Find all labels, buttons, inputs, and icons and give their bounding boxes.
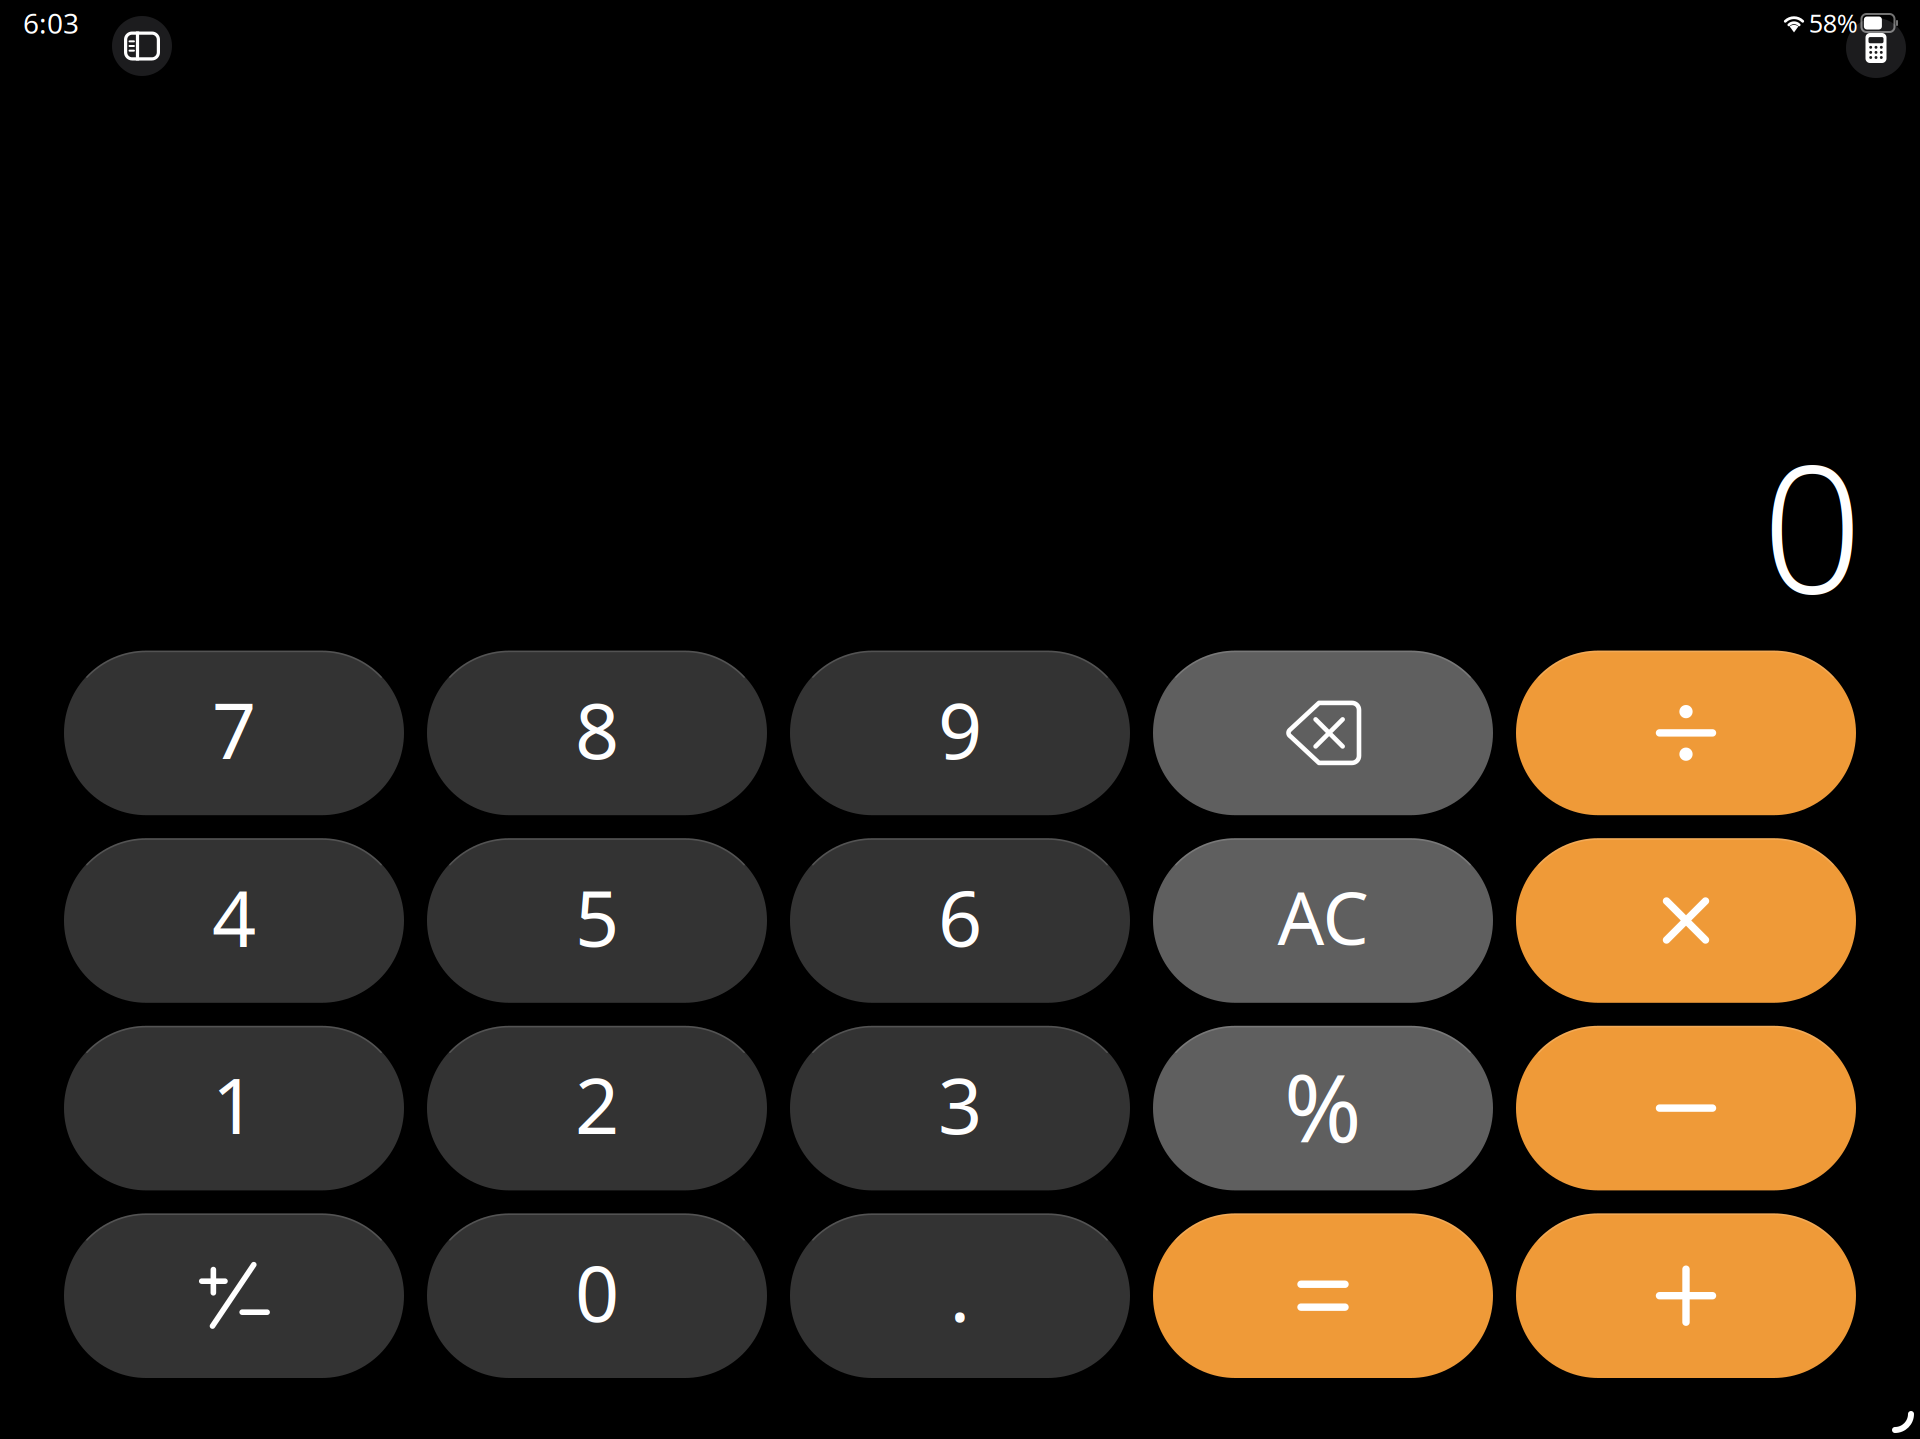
button[interactable]: Subtract (1516, 1026, 1856, 1190)
button[interactable]: Toggle sign (64, 1213, 404, 1378)
button[interactable]: 6 (790, 838, 1130, 1003)
button[interactable]: Equals (1153, 1213, 1493, 1378)
button[interactable]: 0 (427, 1213, 767, 1378)
staticText: . (949, 1240, 970, 1343)
staticText: 0 (1762, 408, 1862, 642)
button[interactable]: Delete (1153, 651, 1493, 815)
button[interactable]: Multiply (1516, 838, 1856, 1003)
staticText: 6:03 (23, 4, 79, 42)
button[interactable]: % (1153, 1026, 1493, 1190)
button[interactable]: 5 (427, 838, 767, 1003)
staticText: 58% (1809, 6, 1858, 40)
button[interactable]: 9 (790, 651, 1130, 815)
staticText: 5 (575, 865, 619, 968)
button[interactable]: 4 (64, 838, 404, 1003)
staticText: 9 (938, 678, 982, 780)
staticText: 7 (212, 678, 256, 780)
button[interactable]: 8 (427, 651, 767, 815)
staticText: 2 (575, 1053, 619, 1155)
button[interactable]: 3 (790, 1026, 1130, 1190)
staticText: 1 (212, 1053, 256, 1155)
staticText: 0 (575, 1240, 619, 1343)
button[interactable]: . (790, 1213, 1130, 1378)
button[interactable]: Show Sidebar (112, 16, 172, 76)
staticText: 4 (212, 865, 256, 968)
staticText: 6 (938, 865, 982, 968)
button[interactable]: 1 (64, 1026, 404, 1190)
staticText: 3 (938, 1053, 982, 1155)
button[interactable]: AC (1153, 838, 1493, 1003)
button[interactable]: 2 (427, 1026, 767, 1190)
staticText: AC (1277, 868, 1368, 965)
button[interactable]: Calculator (1846, 18, 1906, 78)
button[interactable]: Divide (1516, 651, 1856, 815)
staticText: % (1284, 1044, 1362, 1168)
button[interactable]: Add (1516, 1213, 1856, 1378)
button[interactable]: 7 (64, 651, 404, 815)
staticText: 8 (575, 678, 619, 780)
